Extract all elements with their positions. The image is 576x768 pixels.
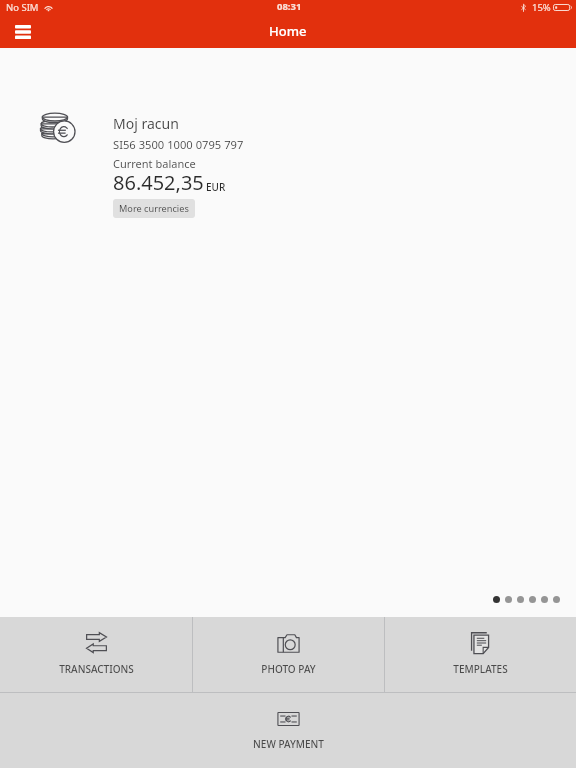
button[interactable]: Moj racun <box>0 48 576 214</box>
button[interactable]: TRANSACTIONS <box>0 617 192 692</box>
staticText: NEW PAYMENT <box>253 737 324 751</box>
staticText: PHOTO PAY <box>261 662 316 676</box>
staticText: EUR <box>206 180 226 194</box>
staticText: Current balance <box>113 156 196 171</box>
staticText: 15% <box>532 1 551 14</box>
staticText: 86.452,35 <box>113 169 204 196</box>
button[interactable]: More currencies <box>113 199 195 218</box>
staticText: 08:31 <box>277 0 302 13</box>
button[interactable]: Open navigation menu <box>7 20 39 44</box>
staticText: SI56 3500 1000 0795 797 <box>113 137 244 152</box>
staticText: Moj racun <box>113 114 179 133</box>
button[interactable]: NEW PAYMENT <box>0 693 576 768</box>
staticText: More currencies <box>119 202 189 215</box>
staticText: TRANSACTIONS <box>59 662 134 676</box>
button[interactable]: PHOTO PAY <box>193 617 384 692</box>
staticText: TEMPLATES <box>453 662 508 676</box>
button[interactable]: TEMPLATES <box>385 617 576 692</box>
staticText: No SIM <box>6 1 39 14</box>
staticText: Home <box>269 22 307 40</box>
